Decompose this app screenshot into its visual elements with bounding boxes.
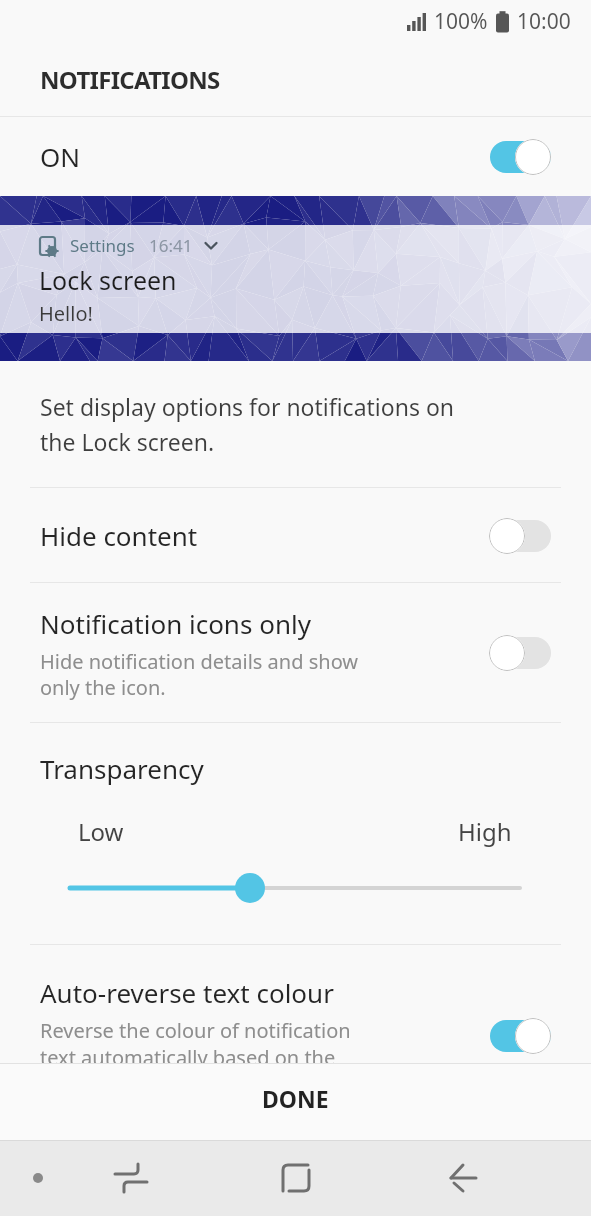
button[interactable] bbox=[272, 1154, 320, 1202]
button[interactable] bbox=[26, 1166, 50, 1190]
button[interactable] bbox=[489, 1018, 551, 1054]
staticText: Hello! bbox=[39, 300, 93, 327]
staticText: Low bbox=[78, 815, 124, 848]
staticText: 10:00 bbox=[517, 7, 571, 36]
button[interactable]: Notification icons only bbox=[0, 583, 591, 723]
staticText: Settings bbox=[70, 234, 135, 257]
staticText: ON bbox=[40, 139, 81, 174]
button[interactable] bbox=[489, 139, 551, 175]
staticText: Notification icons only bbox=[40, 606, 311, 641]
staticText: Hide content bbox=[40, 518, 198, 553]
staticText: 16:41 bbox=[149, 234, 193, 257]
staticText: Auto-reverse text colour bbox=[40, 975, 334, 1010]
button[interactable]: Auto-reverse text colour bbox=[0, 945, 591, 1063]
staticText: Set display options for notifications on… bbox=[40, 391, 455, 458]
staticText: Transparency bbox=[40, 751, 204, 786]
button[interactable]: ON bbox=[0, 117, 591, 196]
button[interactable] bbox=[439, 1154, 487, 1202]
staticText: DONE bbox=[262, 1083, 329, 1114]
button[interactable]: Hide content bbox=[0, 488, 591, 583]
button[interactable] bbox=[489, 518, 551, 554]
staticText: Hide notification details and show only … bbox=[40, 648, 359, 701]
staticText: 100% bbox=[434, 7, 488, 36]
staticText: Lock screen bbox=[39, 263, 177, 297]
button[interactable] bbox=[0, 868, 591, 908]
staticText: NOTIFICATIONS bbox=[40, 63, 220, 96]
staticText: High bbox=[458, 815, 512, 848]
button[interactable] bbox=[489, 635, 551, 671]
button[interactable]: DONE bbox=[0, 1063, 591, 1140]
button[interactable] bbox=[107, 1154, 155, 1202]
staticText: Reverse the colour of notification text … bbox=[40, 1017, 351, 1063]
